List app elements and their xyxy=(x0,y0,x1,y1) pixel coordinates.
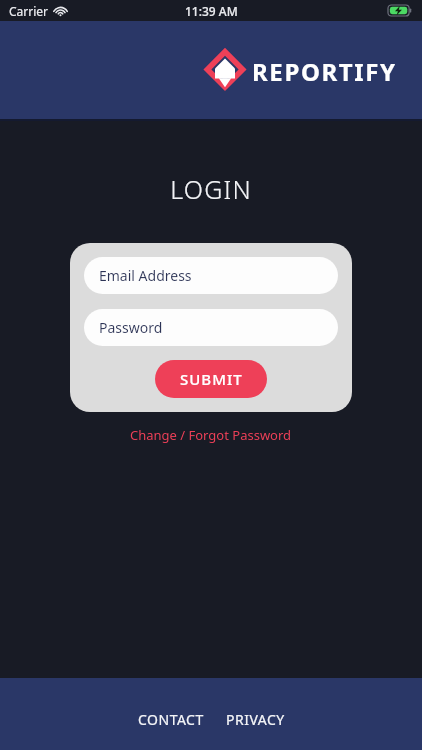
staticText: CONTACT xyxy=(138,710,204,729)
button[interactable]: Change / Forgot Password xyxy=(124,423,298,447)
staticText: LOGIN xyxy=(170,172,252,206)
button[interactable]: CONTACT xyxy=(133,706,209,733)
button[interactable]: SUBMIT xyxy=(155,360,267,398)
staticText: Change / Forgot Password xyxy=(130,426,292,444)
button[interactable]: Reportify home xyxy=(205,51,397,91)
staticText: SUBMIT xyxy=(180,369,243,389)
staticText: 11:39 AM xyxy=(185,3,238,19)
staticText: Carrier xyxy=(9,3,49,19)
staticText: Password xyxy=(99,318,163,337)
button[interactable]: Email Address xyxy=(84,257,338,294)
button[interactable]: PRIVACY xyxy=(221,706,290,733)
staticText: Email Address xyxy=(99,266,192,285)
button[interactable]: Password xyxy=(84,309,338,346)
staticText: PRIVACY xyxy=(226,710,285,729)
staticText: REPORTIFY xyxy=(252,55,397,88)
